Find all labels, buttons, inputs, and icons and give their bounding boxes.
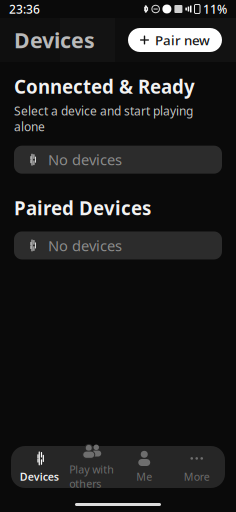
button[interactable]: More [170, 444, 223, 490]
button[interactable]: Pair new [128, 28, 222, 52]
staticText: Play with others [69, 462, 114, 491]
staticText: No devices [48, 236, 122, 255]
staticText: Devices [14, 26, 95, 54]
staticText: More [184, 469, 210, 484]
button[interactable]: No devices [14, 146, 222, 174]
staticText: Devices [20, 469, 59, 484]
button[interactable]: No devices [14, 231, 222, 259]
button[interactable]: Devices [13, 444, 65, 490]
staticText: No devices [48, 150, 122, 169]
staticText: Pair new [155, 31, 210, 49]
staticText: Me [136, 469, 152, 484]
staticText: Select a device and start playing alone [14, 103, 193, 135]
button[interactable]: Me [118, 444, 170, 490]
staticText: 11% [203, 1, 227, 17]
staticText: Connected & Ready [14, 74, 195, 99]
button[interactable]: Play with others [65, 437, 118, 497]
staticText: 23:36 [9, 1, 40, 17]
staticText: Paired Devices [14, 196, 151, 220]
